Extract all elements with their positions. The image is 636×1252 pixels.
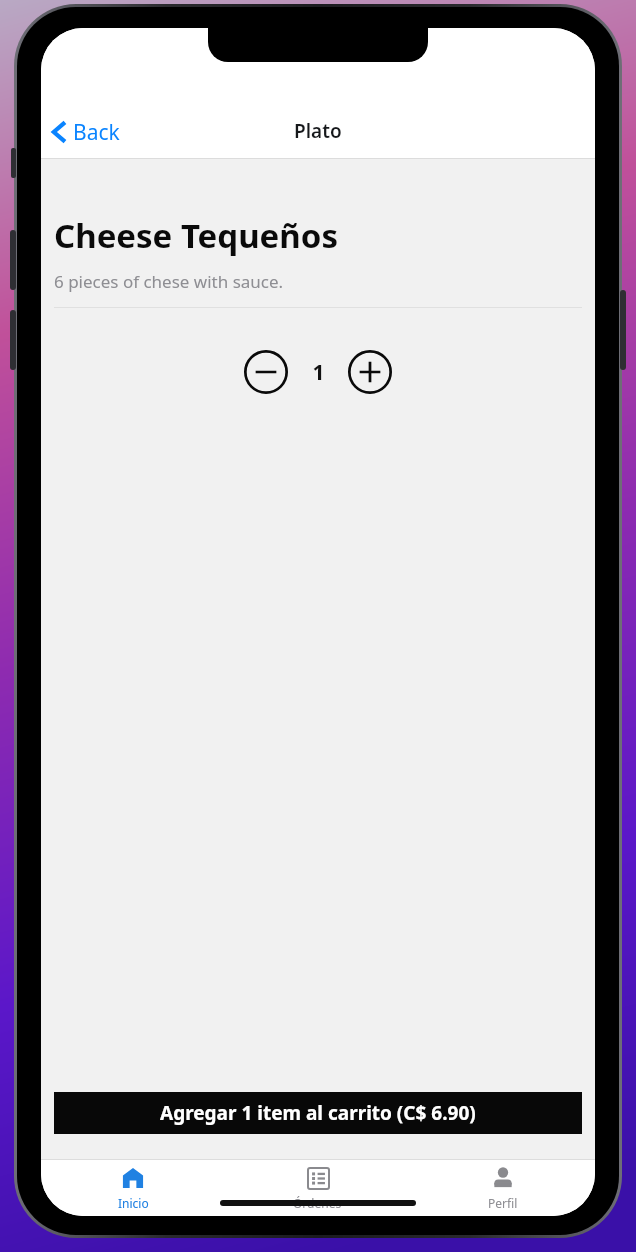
button[interactable]: Agregar 1 item al carrito (C$ 6.90) [54,1092,582,1134]
button[interactable]: Perfil [410,1159,595,1216]
staticText: Plato [294,118,342,144]
button[interactable]: Inicio [41,1159,225,1216]
staticText: Inicio [118,1195,149,1211]
button[interactable]: Órdenes [225,1159,410,1216]
staticText: Back [73,118,120,147]
staticText: Perfil [488,1195,518,1211]
staticText: Órdenes [293,1195,342,1211]
staticText: Agregar 1 item al carrito (C$ 6.90) [160,1100,476,1126]
staticText: 6 pieces of chese with sauce. [54,270,284,293]
button[interactable]: Back [41,105,134,159]
button[interactable]: Decrease quantity [244,350,288,394]
button[interactable]: Increase quantity [348,350,392,394]
staticText: 1 [312,358,325,387]
staticText: Cheese Tequeños [54,213,338,258]
